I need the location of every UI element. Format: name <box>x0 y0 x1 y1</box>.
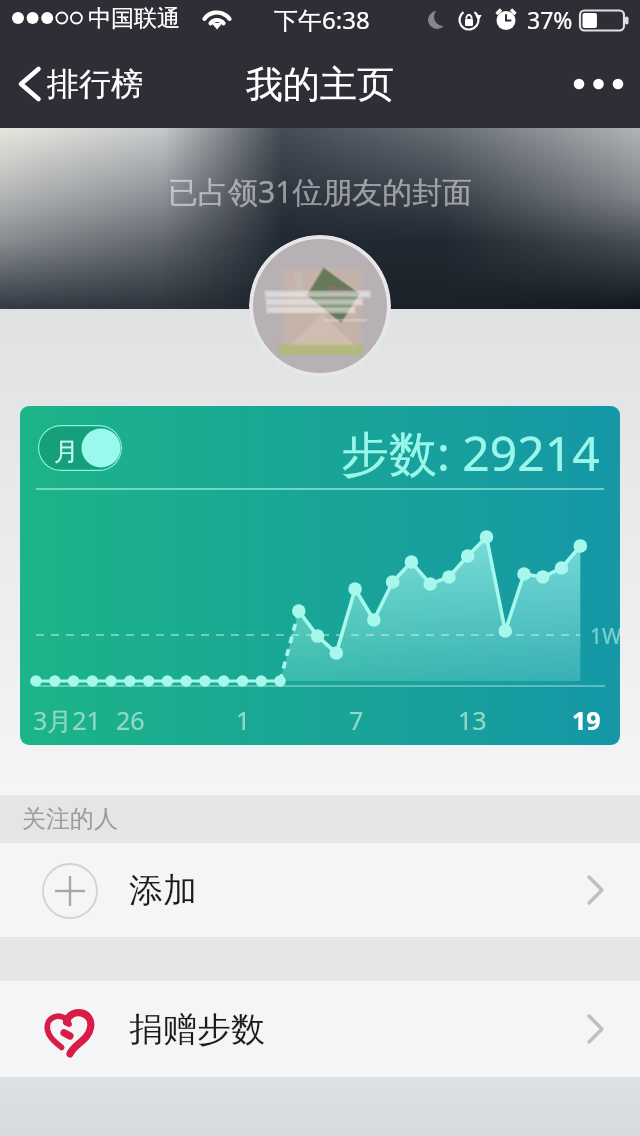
staticText: 1W <box>590 622 620 651</box>
staticText: 19 <box>572 703 601 737</box>
button[interactable]: 添加 <box>0 843 640 937</box>
staticText: 排行榜 <box>47 64 143 104</box>
staticText: 37% <box>527 4 573 35</box>
button[interactable]: More options <box>557 53 640 115</box>
staticText: 26 <box>116 703 145 737</box>
staticText: 中国联通 <box>88 4 180 33</box>
staticText: 捐赠步数 <box>129 1008 265 1051</box>
staticText: 月 <box>54 436 79 467</box>
staticText: 我的主页 <box>246 61 394 108</box>
staticText: 添加 <box>129 869 197 912</box>
button[interactable]: 排行榜 <box>0 54 163 114</box>
button[interactable]: 月 <box>38 425 122 471</box>
staticText: 13 <box>458 703 487 737</box>
staticText: 1 <box>236 703 251 737</box>
button[interactable]: Profile photo <box>249 235 391 377</box>
staticText: 3月21 <box>33 703 101 737</box>
staticText: 步数: 29214 <box>341 420 600 486</box>
button[interactable]: 捐赠步数 <box>0 981 640 1077</box>
staticText: 关注的人 <box>22 804 118 834</box>
staticText: 7 <box>349 703 364 737</box>
staticText: 已占领31位朋友的封面 <box>168 171 473 212</box>
staticText: 下午6:38 <box>274 3 370 36</box>
